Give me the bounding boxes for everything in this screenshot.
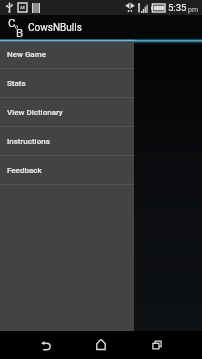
staticText: New Game — [7, 50, 46, 59]
staticText: B — [16, 26, 24, 39]
button[interactable]: C — [0, 15, 202, 40]
staticText: CowsNBulls — [28, 22, 82, 34]
button[interactable]: Instructions — [0, 127, 134, 156]
button[interactable]: Stats — [0, 69, 134, 98]
button[interactable]: Recent apps — [129, 331, 185, 359]
staticText: Stats — [7, 79, 26, 88]
staticText: 5:35 — [168, 2, 187, 13]
staticText: View Dictionary — [7, 108, 63, 117]
staticText: Instructions — [7, 137, 50, 146]
button[interactable]: View Dictionary — [0, 98, 134, 127]
staticText: C — [8, 16, 16, 29]
button[interactable]: Home — [73, 331, 129, 359]
button[interactable]: Back — [17, 331, 73, 359]
button[interactable]: New Game — [0, 40, 134, 69]
button[interactable]: Feedback — [0, 156, 134, 185]
staticText: Feedback — [7, 166, 42, 175]
staticText: pm — [188, 6, 199, 14]
